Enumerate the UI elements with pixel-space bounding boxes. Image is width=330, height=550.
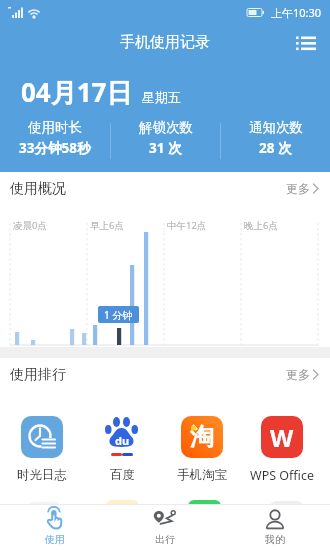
staticText: 使用时长 [28,119,82,136]
staticText: 使用排行 [10,366,66,384]
staticText: 晚上6点 [244,219,278,232]
button[interactable]: 使用时长 [0,110,110,166]
button[interactable]: 解锁次数 [111,110,220,166]
button[interactable]: 更多 [286,181,320,196]
staticText: 时光日志 [17,467,67,483]
button[interactable]: 通知次数 [221,110,330,166]
staticText: du [115,433,130,448]
staticText: 上午10:30 [271,5,322,20]
button[interactable]: 时光日志 [2,416,82,483]
staticText: 28 次 [259,139,292,157]
staticText: 早上6点 [90,219,124,232]
button[interactable]: 出行 [110,505,220,549]
staticText: 1 分钟 [104,308,133,322]
staticText: W [270,421,294,454]
staticText: 使用 [45,533,65,546]
staticText: 解锁次数 [139,119,193,136]
button[interactable]: W [242,416,322,484]
staticText: 04月17日 [21,74,133,110]
staticText: 出行 [155,533,175,546]
staticText: 我的 [265,533,285,546]
button[interactable]: 我的 [220,505,330,549]
staticText: 通知次数 [249,119,303,136]
staticText: 中午12点 [167,219,207,232]
staticText: 33分钟58秒 [19,139,91,157]
staticText: 手机淘宝 [177,467,227,483]
button[interactable]: 淘 [162,416,242,483]
staticText: WPS Office [250,467,314,484]
button[interactable]: 更多 [286,367,320,382]
staticText: 更多 [286,367,310,382]
button[interactable]: 使用 [0,505,110,549]
staticText: 使用概况 [10,180,66,198]
staticText: 星期五 [142,89,181,105]
staticText: 淘 [190,422,214,452]
button[interactable]: du [82,416,162,483]
staticText: 凌晨0点 [13,219,47,232]
staticText: 更多 [286,181,310,196]
staticText: 31 次 [149,139,182,157]
staticText: 手机使用记录 [120,33,210,52]
staticText: 百度 [110,467,135,483]
button[interactable] [292,29,320,57]
